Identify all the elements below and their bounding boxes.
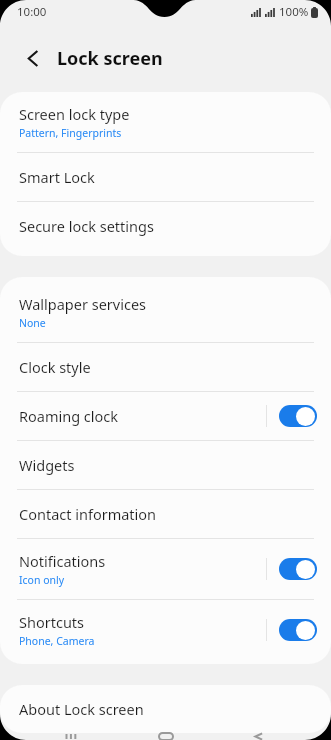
button[interactable]: Home — [144, 733, 188, 740]
button[interactable]: Shortcuts toggle — [279, 619, 317, 641]
staticText: Roaming clock — [19, 406, 119, 426]
button[interactable]: Recent apps — [50, 733, 94, 740]
staticText: Clock style — [19, 357, 91, 377]
staticText: Lock screen — [57, 46, 163, 71]
button[interactable]: Widgets — [0, 441, 331, 489]
staticText: About Lock screen — [19, 699, 144, 719]
staticText: 100% — [279, 4, 309, 20]
button[interactable]: Roaming clock — [0, 392, 331, 440]
staticText: Notifications — [19, 551, 106, 571]
staticText: Icon only — [19, 573, 65, 587]
button[interactable]: Notifications — [0, 539, 331, 599]
button[interactable]: Roaming clock toggle — [279, 405, 317, 427]
staticText: Phone, Camera — [19, 634, 95, 648]
button[interactable]: Wallpaper services — [0, 282, 331, 342]
button[interactable]: Secure lock settings — [0, 202, 331, 250]
button[interactable]: Back — [16, 41, 50, 75]
button[interactable]: Notifications toggle — [279, 558, 317, 580]
staticText: Wallpaper services — [19, 294, 147, 314]
staticText: Widgets — [19, 455, 75, 475]
staticText: Shortcuts — [19, 612, 85, 632]
button[interactable]: Back — [237, 733, 281, 740]
staticText: Smart Lock — [19, 167, 95, 187]
staticText: 10:00 — [17, 4, 47, 20]
staticText: Screen lock type — [19, 104, 130, 124]
button[interactable]: Smart Lock — [0, 153, 331, 201]
staticText: Contact information — [19, 504, 157, 524]
staticText: Secure lock settings — [19, 216, 154, 236]
button[interactable]: Shortcuts — [0, 600, 331, 660]
staticText: Pattern, Fingerprints — [19, 126, 122, 140]
button[interactable]: Clock style — [0, 343, 331, 391]
button[interactable]: Screen lock type — [0, 92, 331, 152]
staticText: None — [19, 316, 46, 330]
button[interactable]: Contact information — [0, 490, 331, 538]
button[interactable]: About Lock screen — [0, 685, 331, 733]
